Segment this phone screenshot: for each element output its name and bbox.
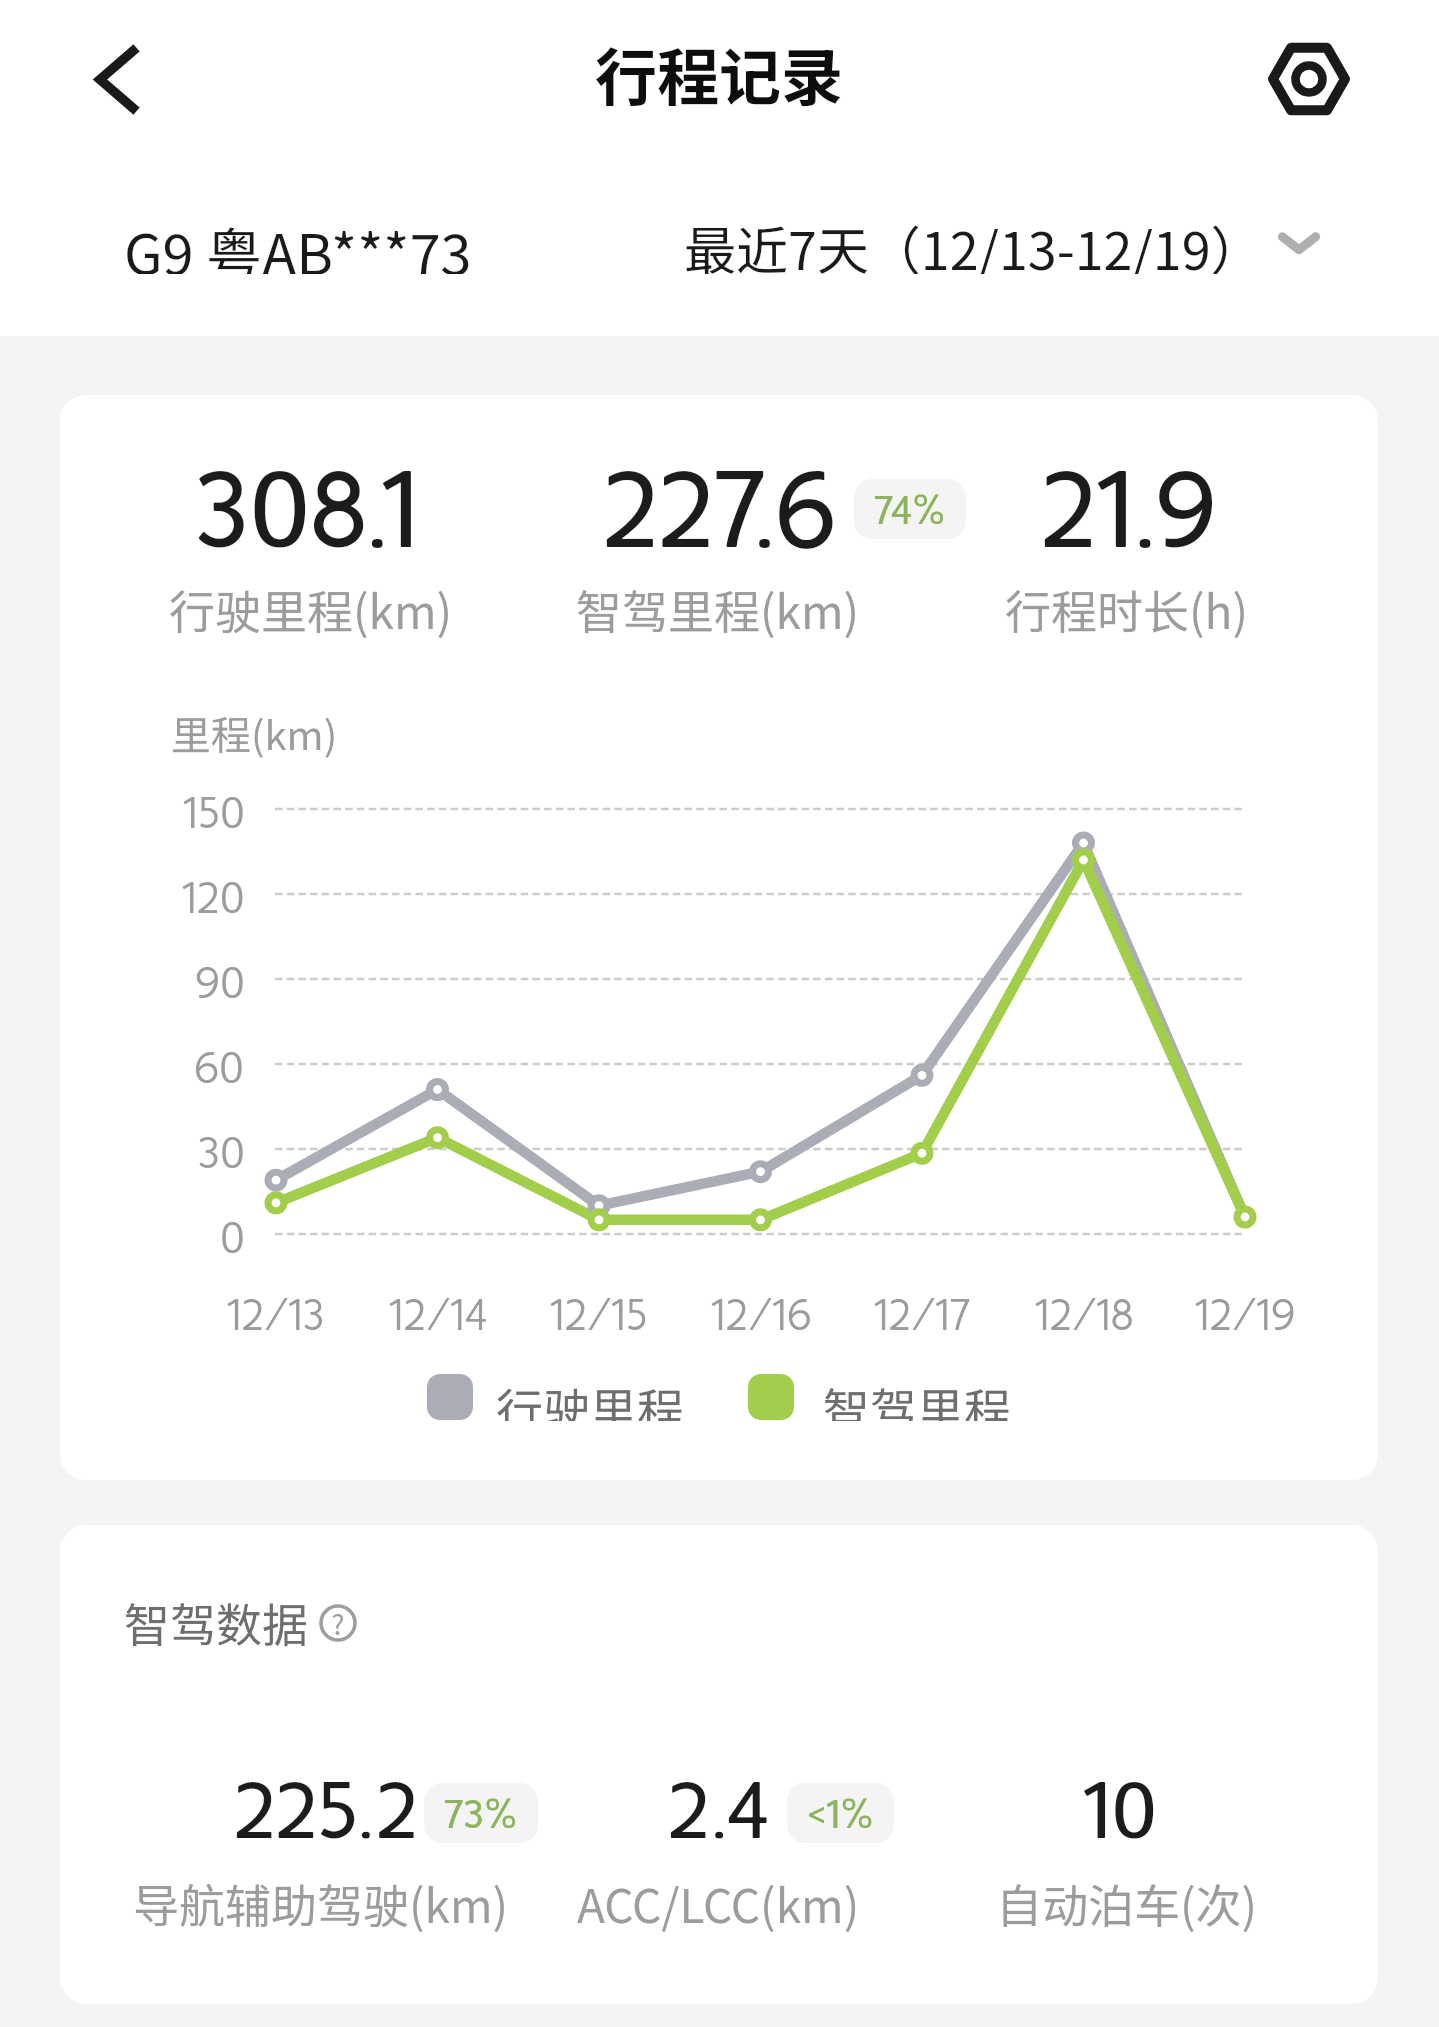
staticText: 21.9 (1041, 446, 1217, 571)
staticText: 0 (220, 1212, 245, 1264)
staticText: 73% (444, 1790, 518, 1837)
staticText: 150 (183, 787, 245, 839)
staticText: 12/14 (389, 1289, 488, 1339)
staticText: ACC/LCC(km) (577, 1870, 860, 1937)
staticText: 30 (198, 1127, 245, 1179)
staticText: 60 (194, 1042, 245, 1094)
staticText: 导航辅助驾驶(km) (133, 1870, 509, 1937)
staticText: 行驶里程 (496, 1373, 684, 1421)
staticText: 12/18 (1035, 1289, 1134, 1339)
button[interactable]: Settings (1254, 25, 1366, 137)
staticText: 智驾里程(km) (576, 576, 860, 643)
staticText: 308.1 (195, 446, 420, 571)
staticText: ? (331, 1603, 345, 1641)
button[interactable]: 智驾数据 (124, 1589, 357, 1656)
staticText: 10 (1083, 1762, 1157, 1856)
staticText: <1% (807, 1790, 874, 1837)
button[interactable]: 最近7天（12/13-12/19） (684, 210, 1325, 274)
staticText: 最近7天（12/13-12/19） (684, 210, 1263, 274)
staticText: 227.6 (603, 446, 837, 571)
staticText: 12/15 (550, 1289, 648, 1339)
staticText: 225.2 (234, 1762, 418, 1856)
staticText: 行程时长(h) (1005, 576, 1249, 643)
staticText: 12/19 (1195, 1289, 1296, 1339)
staticText: 行驶里程(km) (169, 576, 453, 643)
staticText: 里程(km) (171, 704, 338, 762)
staticText: 智驾数据 (124, 1589, 308, 1656)
staticText: 90 (195, 957, 245, 1009)
staticText: 12/16 (711, 1289, 812, 1339)
staticText: 2.4 (668, 1762, 770, 1856)
staticText: 自动泊车(次) (996, 1870, 1258, 1937)
staticText: 74% (874, 486, 946, 533)
staticText: G9 粤AB***73 (124, 210, 472, 274)
staticText: 智驾里程 (823, 1373, 1011, 1421)
staticText: 12/13 (227, 1289, 325, 1339)
staticText: 行程记录 (595, 28, 844, 118)
staticText: 12/17 (874, 1289, 971, 1339)
button[interactable]: Back (56, 32, 152, 128)
staticText: 120 (182, 872, 245, 924)
